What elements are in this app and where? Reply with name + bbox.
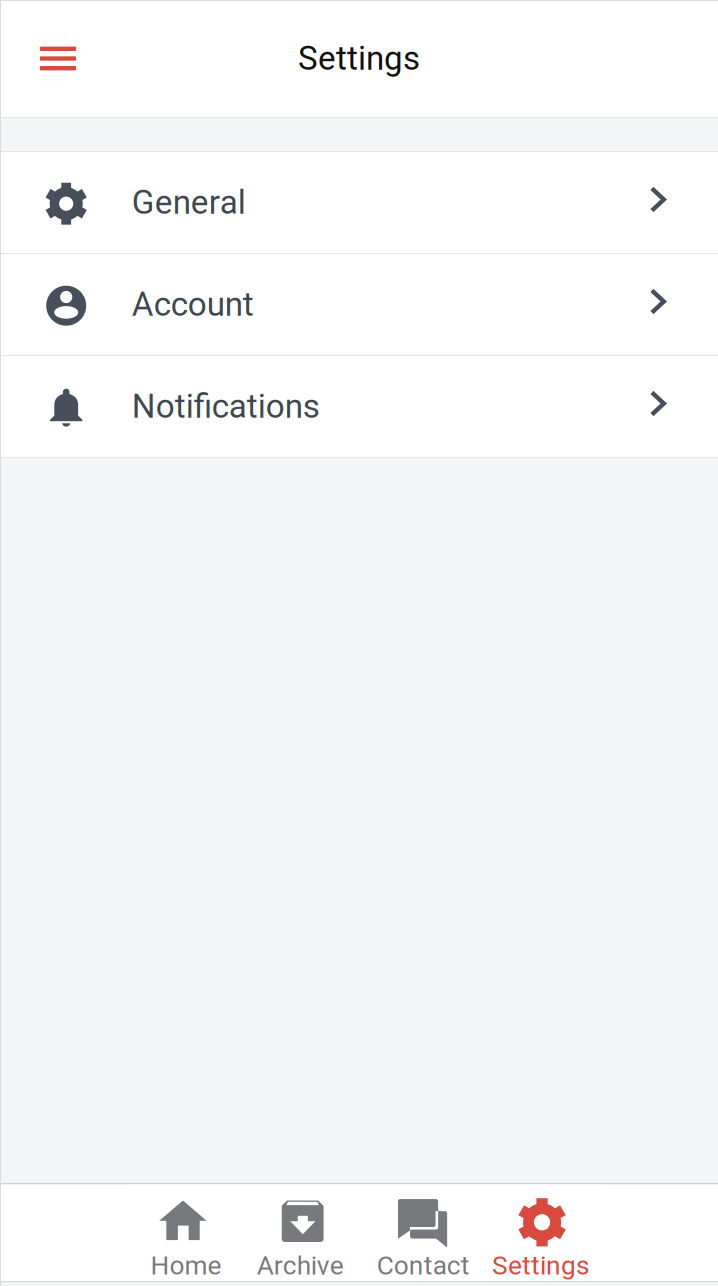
staticText: Home	[150, 1250, 221, 1281]
staticText: Contact	[377, 1250, 470, 1281]
staticText: Settings	[298, 39, 420, 78]
staticText: General	[132, 183, 246, 222]
button[interactable]: General	[0, 152, 718, 253]
button[interactable]: Archive	[245, 1184, 363, 1281]
button[interactable]: Notifications	[0, 356, 718, 457]
button[interactable]: Menu	[26, 26, 90, 90]
staticText: Account	[132, 285, 254, 324]
button[interactable]: Settings	[482, 1184, 601, 1281]
button[interactable]: Account	[0, 254, 718, 355]
staticText: Archive	[257, 1250, 344, 1281]
staticText: Notifications	[132, 387, 320, 426]
button[interactable]: Contact	[363, 1184, 482, 1281]
staticText: Settings	[492, 1250, 590, 1281]
button[interactable]: Home	[126, 1184, 245, 1281]
